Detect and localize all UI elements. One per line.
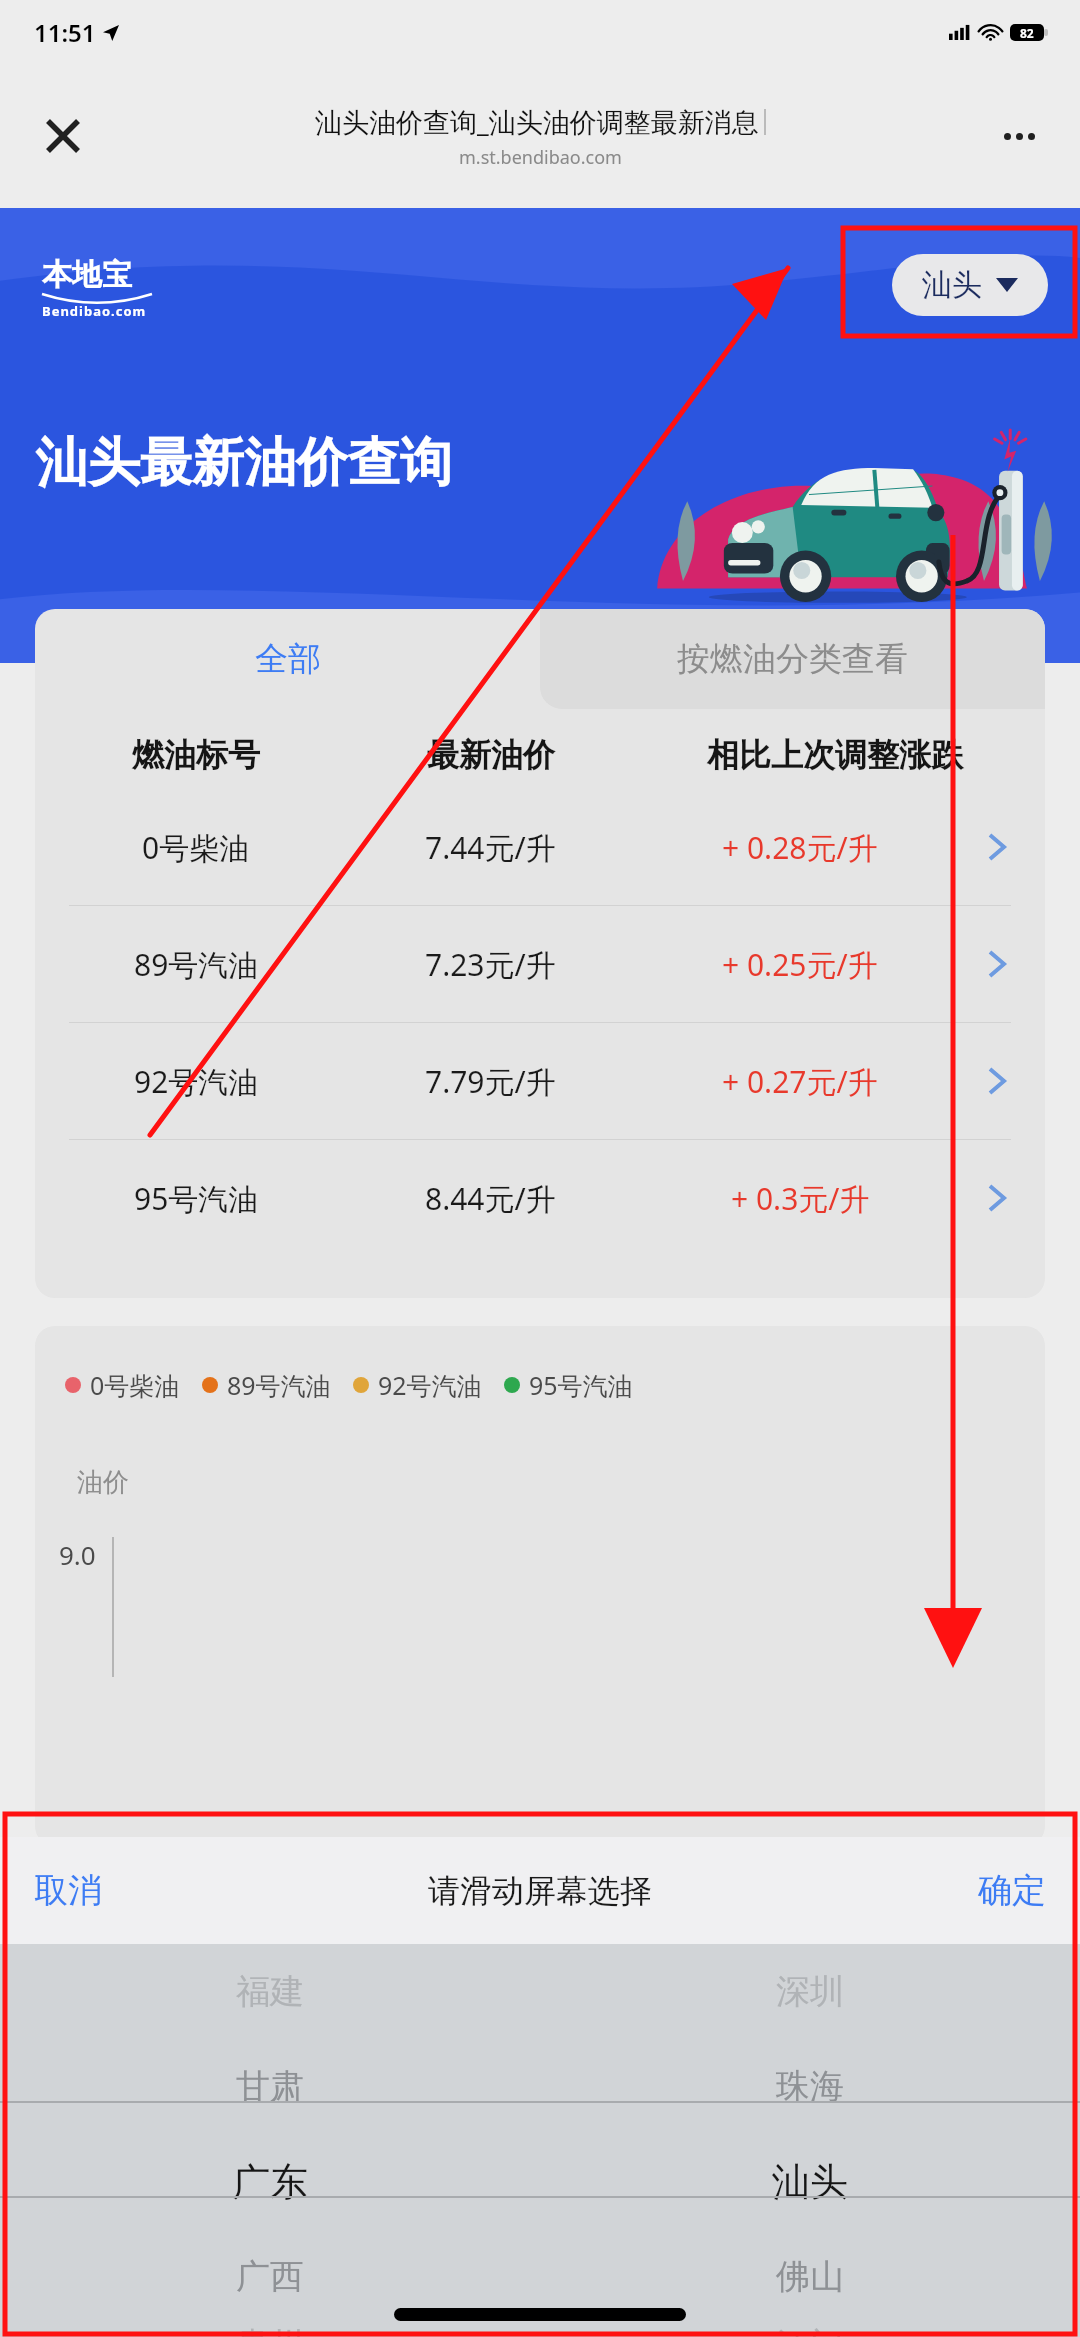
staticText: 深圳: [776, 1970, 844, 2013]
button[interactable]: 全部: [35, 609, 540, 709]
staticText: 最新油价: [427, 735, 555, 775]
staticText: 本地宝: [42, 256, 132, 294]
staticText: 11:51: [34, 16, 96, 49]
button[interactable]: 珠海: [540, 2039, 1080, 2134]
button[interactable]: 按燃油分类查看: [540, 609, 1045, 709]
staticText: + 0.27元/升: [722, 1061, 878, 1102]
staticText: + 0.25元/升: [722, 944, 878, 985]
staticText: 92号汽油: [378, 1368, 482, 1402]
button[interactable]: 89号汽油: [35, 906, 1045, 1022]
staticText: 9.0: [59, 1537, 96, 1572]
staticText: 请滑动屏幕选择: [428, 1871, 652, 1911]
staticText: 贵州: [236, 2324, 304, 2337]
button[interactable]: 取消: [26, 1861, 110, 1920]
staticText: 江门: [776, 2324, 844, 2337]
button[interactable]: 贵州: [0, 2324, 540, 2337]
staticText: 0号柴油: [90, 1368, 180, 1402]
staticText: 汕头最新油价查询: [36, 430, 452, 496]
staticText: 燃油标号: [132, 735, 260, 775]
staticText: 92号汽油: [134, 1061, 259, 1102]
staticText: + 0.28元/升: [722, 827, 878, 868]
staticText: 汕头: [772, 2158, 848, 2206]
button[interactable]: 深圳: [540, 1944, 1080, 2039]
staticText: 89号汽油: [134, 944, 259, 985]
staticText: 甘肃: [236, 2065, 304, 2108]
staticText: 珠海: [776, 2065, 844, 2108]
button[interactable]: 江门: [540, 2324, 1080, 2337]
button[interactable]: 汕头: [540, 2134, 1080, 2229]
staticText: 全部: [255, 638, 321, 680]
staticText: m.st.bendibao.com: [459, 145, 622, 170]
staticText: 相比上次调整涨跌: [707, 735, 963, 775]
staticText: 82: [1020, 25, 1034, 41]
button[interactable]: Close: [36, 109, 90, 163]
button[interactable]: 佛山: [540, 2229, 1080, 2324]
staticText: 佛山: [776, 2255, 844, 2298]
button[interactable]: 福建: [0, 1944, 540, 2039]
button[interactable]: 广西: [0, 2229, 540, 2324]
staticText: + 0.3元/升: [731, 1178, 870, 1219]
button[interactable]: 92号汽油: [35, 1023, 1045, 1139]
staticText: 89号汽油: [227, 1368, 331, 1402]
button[interactable]: 0号柴油: [35, 789, 1045, 905]
staticText: 0号柴油: [142, 827, 250, 868]
button[interactable]: 甘肃: [0, 2039, 540, 2134]
staticText: 7.79元/升: [425, 1061, 556, 1102]
staticText: 7.44元/升: [425, 827, 556, 868]
staticText: 95号汽油: [134, 1178, 259, 1219]
staticText: 汕头油价查询_汕头油价调整最新消息: [315, 103, 759, 140]
button[interactable]: 汕头: [892, 254, 1048, 316]
staticText: 7.23元/升: [425, 944, 556, 985]
staticText: 广东: [232, 2158, 308, 2206]
staticText: 汕头: [922, 266, 982, 304]
button[interactable]: 广东: [0, 2134, 540, 2229]
staticText: 按燃油分类查看: [677, 638, 908, 680]
staticText: Bendibao.com: [42, 302, 147, 320]
staticText: 油价: [77, 1466, 129, 1499]
button[interactable]: More options: [992, 109, 1046, 163]
staticText: 95号汽油: [529, 1368, 633, 1402]
button[interactable]: 确定: [970, 1861, 1054, 1920]
staticText: 8.44元/升: [425, 1178, 556, 1219]
staticText: 福建: [236, 1970, 304, 2013]
staticText: 广西: [236, 2255, 304, 2298]
button[interactable]: 95号汽油: [35, 1140, 1045, 1256]
